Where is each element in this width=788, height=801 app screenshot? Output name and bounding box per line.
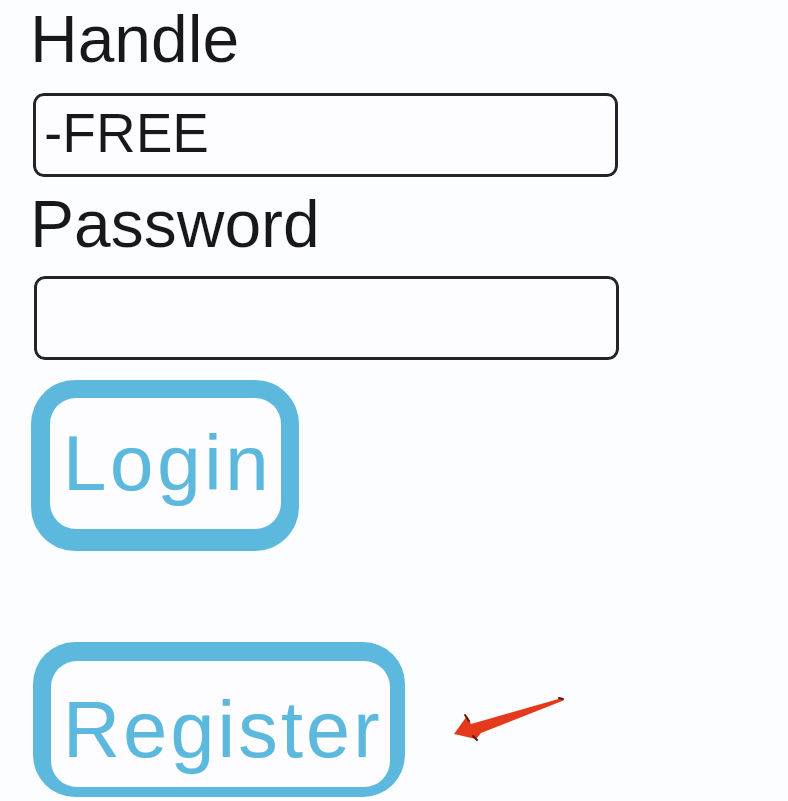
staticText: Handle — [30, 2, 240, 76]
staticText: Register — [63, 685, 383, 773]
staticText: Login — [63, 419, 273, 506]
button[interactable]: -FREE — [33, 93, 618, 177]
button[interactable]: Login — [31, 380, 299, 551]
other: Annotation arrow — [440, 685, 580, 755]
button[interactable] — [34, 276, 619, 360]
staticText: Password — [30, 187, 320, 261]
staticText: -FREE — [44, 102, 209, 163]
button[interactable]: Register — [33, 642, 405, 797]
